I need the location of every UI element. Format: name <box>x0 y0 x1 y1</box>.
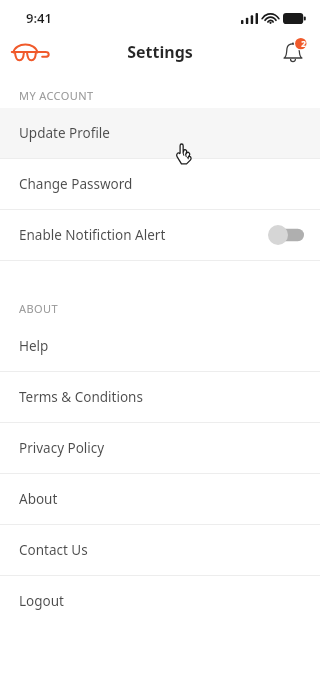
staticText: Terms & Conditions <box>19 388 143 406</box>
button[interactable]: Update Profile <box>0 108 320 158</box>
button[interactable]: Notifications, 2 unread <box>276 36 310 68</box>
button[interactable]: Logout <box>0 576 320 626</box>
button[interactable]: App logo <box>8 38 54 66</box>
staticText: Help <box>19 337 49 355</box>
button[interactable]: About <box>0 474 320 524</box>
button[interactable]: Enable Notifiction Alert <box>0 210 320 260</box>
button[interactable]: Help <box>0 321 320 371</box>
staticText: Privacy Policy <box>19 439 105 457</box>
staticText: MY ACCOUNT <box>19 88 94 103</box>
staticText: Change Password <box>19 175 133 193</box>
staticText: ABOUT <box>19 301 58 316</box>
button[interactable]: Change Password <box>0 159 320 209</box>
staticText: About <box>19 490 58 508</box>
button[interactable]: Privacy Policy <box>0 423 320 473</box>
button[interactable]: Contact Us <box>0 525 320 575</box>
staticText: Logout <box>19 592 64 610</box>
staticText: 2 <box>301 38 306 49</box>
staticText: Update Profile <box>19 124 110 142</box>
button[interactable]: Enable Notifiction Alert toggle, off <box>268 225 304 245</box>
staticText: Settings <box>127 41 193 63</box>
button[interactable]: Terms & Conditions <box>0 372 320 422</box>
staticText: Enable Notifiction Alert <box>19 226 166 244</box>
staticText: Contact Us <box>19 541 88 559</box>
staticText: 9:41 <box>26 9 52 27</box>
